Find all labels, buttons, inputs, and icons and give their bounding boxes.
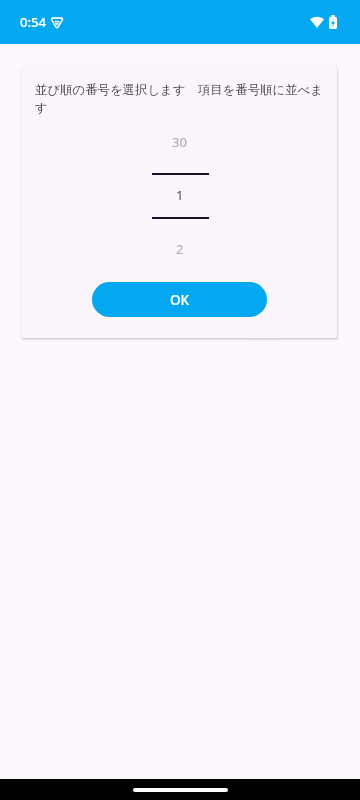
staticText: 2: [176, 240, 184, 258]
other: Battery charging: [329, 15, 337, 29]
staticText: 30: [172, 133, 187, 151]
other: VPN active: [51, 17, 63, 28]
button[interactable]: 1: [22, 173, 337, 217]
button[interactable]: OK: [92, 282, 267, 317]
staticText: 1: [176, 186, 184, 204]
button[interactable]: 30: [22, 120, 337, 164]
staticText: OK: [170, 291, 190, 309]
button[interactable]: Home: [133, 788, 228, 792]
other: Wi-Fi: [310, 15, 324, 29]
staticText: 並び順の番号を選択します 項目を番号順に並べます: [35, 81, 326, 116]
staticText: 0:54: [20, 13, 46, 31]
